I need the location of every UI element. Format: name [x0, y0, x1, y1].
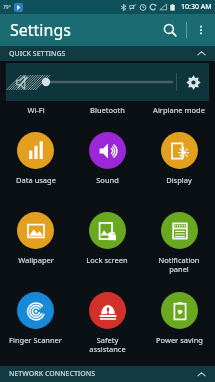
staticText: Wallpaper — [18, 255, 54, 265]
button[interactable]: Airplane mode — [143, 105, 215, 123]
staticText: Sound — [96, 175, 119, 185]
button[interactable]: More options — [187, 16, 215, 44]
staticText: Display — [166, 175, 192, 185]
button[interactable]: Wallpaper — [0, 203, 71, 283]
button[interactable]: Safety assistance — [71, 283, 143, 363]
staticText: 79° — [3, 4, 11, 11]
staticText: NETWORK CONNECTIONS — [9, 369, 96, 379]
button[interactable]: Search — [154, 14, 186, 46]
staticText: Airplane mode — [153, 105, 205, 115]
staticText: Safety assistance — [89, 335, 126, 354]
staticText: Data usage — [16, 175, 56, 185]
staticText: Finger Scanner — [9, 335, 62, 345]
button[interactable]: Lock screen — [71, 203, 143, 283]
button[interactable]: Bluetooth — [71, 105, 143, 123]
button[interactable]: Power saving — [143, 283, 215, 363]
staticText: Notification panel — [158, 255, 200, 274]
staticText: Bluetooth — [90, 105, 125, 115]
button[interactable] — [40, 63, 176, 101]
staticText: Settings — [10, 19, 71, 41]
button[interactable]: NETWORK CONNECTIONS — [0, 366, 215, 382]
button[interactable]: Mute — [6, 63, 40, 101]
button[interactable]: Notification panel — [143, 203, 215, 283]
staticText: Power saving — [156, 335, 203, 345]
button[interactable]: QUICK SETTINGS — [0, 46, 215, 61]
staticText: QUICK SETTINGS — [9, 49, 66, 59]
staticText: Lock screen — [86, 255, 128, 265]
button[interactable]: Sound — [71, 123, 143, 203]
button[interactable]: Sound settings — [177, 63, 209, 101]
button[interactable]: Finger Scanner — [0, 283, 71, 363]
button[interactable]: Data usage — [0, 123, 71, 203]
staticText: Wi-Fi — [27, 105, 45, 115]
button[interactable]: Wi-Fi — [0, 105, 71, 123]
staticText: 10:30 AM — [181, 2, 212, 12]
button[interactable]: Display — [143, 123, 215, 203]
